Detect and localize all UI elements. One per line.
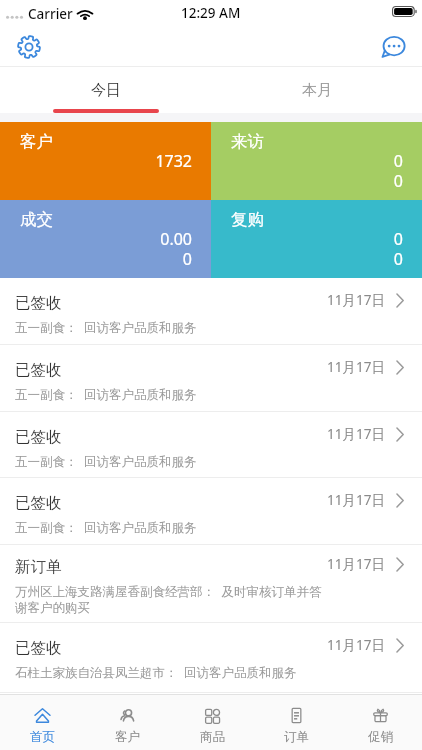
staticText: 1732 (20, 152, 192, 172)
staticText: 今日 (91, 81, 121, 100)
staticText: 首页 (30, 729, 55, 745)
staticText: 0.00 0 (20, 230, 192, 270)
staticText: 商品 (200, 729, 225, 745)
button[interactable]: 首页 (0, 695, 85, 750)
button[interactable]: 成交 (0, 200, 211, 278)
staticText: 已签收 (15, 427, 62, 447)
button[interactable]: 已签收 (0, 623, 422, 693)
staticText: 已签收 (15, 493, 62, 513)
button[interactable]: 来访 (211, 122, 422, 200)
staticText: 0 0 (231, 152, 403, 192)
staticText: 谢客户的购买 (15, 600, 90, 616)
staticText: 五一副食： 回访客户品质和服务 (15, 386, 197, 403)
staticText: 11月17日 (327, 555, 385, 573)
staticText: 来访 (231, 131, 264, 152)
staticText: 订单 (284, 729, 309, 745)
staticText: 五一副食： 回访客户品质和服务 (15, 319, 197, 336)
staticText: 已签收 (15, 293, 62, 313)
staticText: 新订单 (15, 557, 62, 577)
button[interactable]: Messages (378, 32, 408, 62)
button[interactable]: 商品 (170, 695, 254, 750)
staticText: 11月17日 (327, 491, 385, 509)
button[interactable]: 已签收 (0, 412, 422, 478)
button[interactable]: 客户 (85, 695, 170, 750)
button[interactable]: 今日 (0, 66, 211, 113)
staticText: 复购 (231, 209, 264, 230)
button[interactable]: 订单 (254, 695, 338, 750)
staticText: 11月17日 (327, 636, 385, 654)
button[interactable]: 促销 (338, 695, 422, 750)
staticText: 12:29 AM (181, 4, 241, 22)
staticText: 已签收 (15, 360, 62, 380)
staticText: 本月 (302, 81, 332, 100)
button[interactable]: 已签收 (0, 478, 422, 545)
staticText: 成交 (20, 209, 53, 230)
button[interactable]: 已签收 (0, 278, 422, 345)
button[interactable]: 已签收 (0, 345, 422, 412)
button[interactable]: 复购 (211, 200, 422, 278)
staticText: 五一副食： 回访客户品质和服务 (15, 453, 197, 470)
staticText: 11月17日 (327, 425, 385, 443)
button[interactable]: Settings (14, 32, 44, 62)
staticText: 促销 (368, 729, 393, 745)
staticText: 0 0 (231, 230, 403, 270)
staticText: 万州区上海支路满屋香副食经营部： 及时审核订单并答 (15, 583, 322, 600)
staticText: 已签收 (15, 638, 62, 658)
staticText: 11月17日 (327, 291, 385, 309)
staticText: Carrier (28, 5, 73, 23)
staticText: 客户 (20, 131, 53, 152)
button[interactable]: 新订单 (0, 545, 422, 623)
button[interactable]: 本月 (211, 66, 422, 113)
staticText: 11月17日 (327, 358, 385, 376)
staticText: 五一副食： 回访客户品质和服务 (15, 519, 197, 536)
button[interactable]: 客户 (0, 122, 211, 200)
staticText: 客户 (115, 729, 140, 745)
staticText: 石柱土家族自治县凤兰超市： 回访客户品质和服务 (15, 664, 297, 681)
